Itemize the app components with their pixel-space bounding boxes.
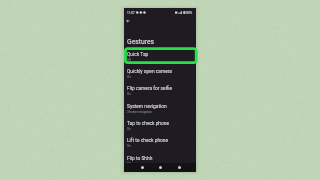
button[interactable]: Back: [124, 17, 132, 25]
button[interactable]: Home: [154, 163, 166, 172]
staticText: 100%: [184, 11, 193, 15]
staticText: Quickly open camera: [127, 69, 172, 75]
staticText: 11:07: [127, 11, 135, 15]
staticText: Off: [127, 58, 131, 61]
staticText: On: [127, 144, 131, 147]
staticText: 3-button navigation: [127, 110, 152, 113]
staticText: Quick Tap: [127, 52, 149, 58]
button[interactable]: Back: [136, 163, 148, 172]
button[interactable]: System navigation: [124, 101, 196, 118]
staticText: System navigation: [127, 104, 167, 110]
staticText: On: [127, 75, 131, 78]
button[interactable]: Flip to Shhh: [124, 153, 196, 170]
button[interactable]: Flip camera for selfie: [124, 83, 196, 100]
button[interactable]: Quickly open camera: [124, 66, 196, 83]
button[interactable]: Recent apps: [173, 163, 185, 172]
staticText: Gestures: [127, 38, 155, 46]
button[interactable]: Lift to check phone: [124, 135, 196, 152]
staticText: Flip to Shhh: [127, 156, 153, 162]
button[interactable]: Quick Tap: [124, 49, 196, 66]
staticText: On: [127, 92, 131, 95]
staticText: Flip camera for selfie: [127, 86, 173, 92]
button[interactable]: Tap to check phone: [124, 118, 196, 135]
staticText: On: [127, 127, 131, 130]
staticText: Tap to check phone: [127, 121, 170, 127]
staticText: Off: [127, 162, 131, 165]
staticText: Lift to check phone: [127, 138, 169, 144]
